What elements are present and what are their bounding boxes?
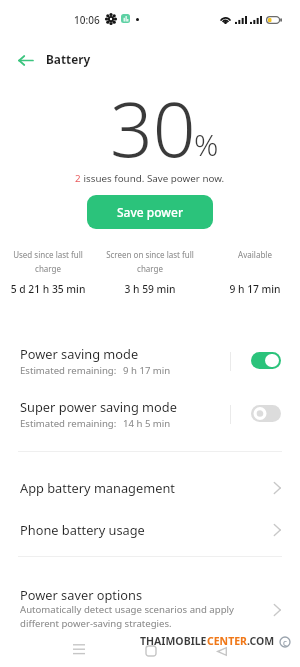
button[interactable]: Power saving mode [0,338,300,390]
button[interactable]: Toggle off [251,405,281,422]
button[interactable]: App battery management [0,466,300,509]
staticText: Phone battery usage [20,521,145,538]
staticText: 3 h 59 min [102,282,198,296]
staticText: Power saver options [20,586,143,603]
staticText: issues found. Save power now. [81,172,225,185]
staticText: Available [207,249,300,260]
staticText: Super power saving mode [20,398,177,415]
staticText: Used since last full charge [0,249,96,274]
staticText: Save power [117,204,183,220]
staticText: 30 [110,77,196,179]
staticText: % [194,124,219,165]
button[interactable]: Power saver options [0,578,300,636]
staticText: 9 h 17 min [123,364,171,377]
button[interactable]: Phone battery usage [0,508,300,551]
staticText: 5 d 21 h 35 min [0,282,96,296]
button[interactable]: Save power [87,195,213,229]
staticText: Automatically detect usage scenarios and… [20,603,252,630]
staticText: App battery management [20,479,175,496]
button[interactable]: Home [129,636,173,664]
staticText: CENTER [207,634,247,648]
staticText: 14 h 5 min [123,417,171,430]
button[interactable]: Super power saving mode [0,391,300,443]
staticText: Estimated remaining: [20,364,117,377]
staticText: Battery [46,51,91,67]
staticText: Screen on since last full charge [102,249,198,274]
staticText: c [283,637,287,648]
staticText: Estimated remaining: [20,417,117,430]
staticText: 2 [75,172,81,185]
staticText: Power saving mode [20,345,139,362]
button[interactable]: Back [12,47,38,73]
button[interactable]: Back [200,636,244,664]
staticText: 10:06 [74,13,100,27]
button[interactable]: Power saving toggle on [251,352,281,369]
staticText: .COM [247,634,275,648]
button[interactable]: Recent apps [57,636,101,664]
staticText: THAIMOBILE [140,634,207,648]
staticText: 9 h 17 min [207,282,300,296]
